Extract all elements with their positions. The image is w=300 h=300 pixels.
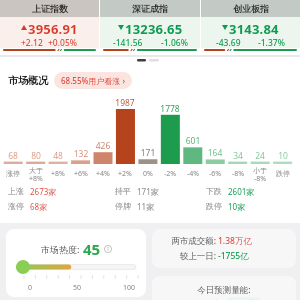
staticText: -1.37%	[258, 37, 285, 49]
staticText: 48	[44, 150, 72, 162]
staticText: +2%	[111, 169, 139, 179]
staticText: 50	[69, 283, 85, 293]
staticText: 大于 +8%	[22, 166, 50, 183]
staticText: 10家	[228, 201, 246, 212]
staticText: 上涨	[8, 186, 24, 196]
staticText: 涨停	[8, 201, 24, 211]
staticText: 2673家	[30, 186, 57, 197]
staticText: 68.55%用户看涨 ›	[61, 75, 125, 86]
staticText: 较上一日:	[152, 250, 216, 262]
staticText: 涨停	[0, 169, 27, 178]
staticText: 两市成交额:	[152, 235, 216, 247]
staticText: +0.05%	[48, 37, 78, 49]
staticText: 2601家	[228, 186, 255, 197]
staticText: 小于 -8%	[246, 166, 274, 183]
staticText: 市场热度:	[41, 243, 80, 255]
staticText: +4%	[89, 169, 117, 179]
staticText: -4%	[179, 169, 207, 179]
staticText: +2.12	[21, 37, 43, 49]
staticText: 0%	[134, 169, 162, 179]
staticText: +1000亿	[230, 298, 258, 300]
staticText: 601	[179, 135, 207, 147]
staticText: 下跌	[206, 186, 222, 196]
staticText: 1987	[111, 97, 139, 109]
staticText: 11家	[137, 201, 155, 212]
staticText: 34	[224, 150, 252, 162]
staticText: 24	[246, 150, 274, 162]
staticText: 3956.91	[28, 20, 78, 35]
staticText: 停牌	[115, 201, 131, 211]
staticText: 1778	[156, 103, 184, 115]
staticText: 68家	[30, 201, 48, 212]
staticText: -2%	[156, 169, 184, 179]
staticText: 今日预测量能:	[152, 284, 296, 296]
staticText: 0	[22, 283, 38, 293]
staticText: 3143.84	[229, 20, 279, 35]
staticText: 创业板指	[233, 3, 269, 14]
staticText: 1.38万亿	[218, 235, 252, 247]
staticText: 持平	[115, 186, 131, 196]
staticText: 跌停	[206, 201, 222, 211]
staticText: +6%	[67, 169, 95, 179]
staticText: 171家	[137, 186, 159, 197]
staticText: -141.56	[113, 37, 143, 49]
staticText: 171	[134, 147, 162, 159]
staticText: 13236.65	[125, 20, 183, 35]
staticText: -43.69	[216, 37, 241, 49]
staticText: -6%	[201, 169, 229, 179]
staticText: 68	[0, 150, 27, 162]
staticText: 跌停	[269, 169, 297, 178]
staticText: -8%	[224, 169, 252, 179]
staticText: -1.06%	[161, 37, 188, 49]
staticText: +8%	[44, 169, 72, 179]
staticText: 426	[89, 140, 117, 152]
staticText: 164	[201, 147, 229, 159]
staticText: 100	[119, 283, 139, 293]
staticText: 80	[22, 150, 50, 162]
staticText: 132	[67, 148, 95, 160]
staticText: 市场概况	[8, 74, 48, 87]
staticText: 上证指数	[32, 3, 68, 14]
staticText: -1755亿	[218, 250, 249, 262]
staticText: 45	[83, 239, 101, 259]
staticText: 深证成指	[132, 3, 168, 14]
staticText: 10	[269, 150, 297, 162]
